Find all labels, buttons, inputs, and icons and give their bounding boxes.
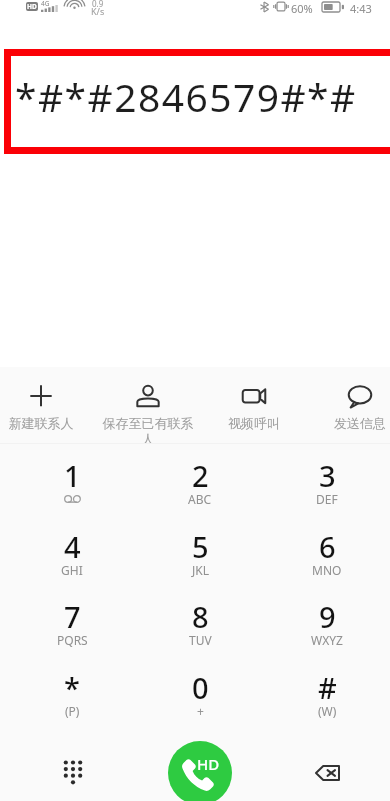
button[interactable]: Backspace	[297, 743, 357, 801]
staticText: ABC	[188, 491, 212, 507]
staticText: DEF	[316, 491, 338, 507]
staticText: 视频呼叫	[206, 415, 302, 431]
staticText: 9	[319, 597, 336, 636]
staticText: 发送信息	[312, 415, 390, 431]
staticText: +	[197, 703, 204, 719]
staticText: 4	[64, 527, 81, 566]
button[interactable]: 8	[145, 585, 255, 656]
staticText: TUV	[189, 632, 212, 648]
staticText: 4G	[41, 0, 50, 8]
button[interactable]: 0	[145, 656, 255, 727]
staticText: 1	[64, 456, 81, 495]
button[interactable]: #	[272, 656, 382, 727]
button[interactable]: 6	[272, 515, 382, 586]
staticText: GHI	[61, 562, 83, 578]
button[interactable]: 4	[17, 515, 127, 586]
staticText: JKL	[192, 562, 209, 578]
staticText: 0	[192, 668, 209, 707]
staticText: 7	[64, 597, 81, 636]
staticText: 新建联系人	[0, 415, 89, 431]
staticText: 8	[192, 597, 209, 636]
button[interactable]: Call	[168, 741, 232, 801]
staticText: *#*#2846579#*#	[15, 70, 390, 123]
staticText: HD	[197, 754, 220, 774]
staticText: 2	[192, 456, 209, 495]
button[interactable]: *	[17, 656, 127, 727]
button[interactable]: 7	[17, 585, 127, 656]
staticText: HD	[27, 2, 37, 11]
button[interactable]: Save to existing contact	[100, 370, 196, 448]
staticText: *	[64, 668, 80, 707]
staticText: 3	[319, 456, 336, 495]
button[interactable]: 2	[145, 444, 255, 515]
staticText: (P)	[65, 703, 80, 719]
staticText: MNO	[312, 562, 342, 578]
staticText: 保存至已有联系人	[100, 415, 196, 448]
staticText: #	[318, 668, 337, 707]
button[interactable]: 9	[272, 585, 382, 656]
staticText: 5	[192, 527, 209, 566]
staticText: 60%	[291, 1, 313, 16]
button[interactable]: 1	[17, 444, 127, 515]
staticText: WXYZ	[311, 632, 343, 648]
button[interactable]: 3	[272, 444, 382, 515]
staticText: 4:43	[350, 1, 372, 16]
button[interactable]: Video call	[206, 370, 302, 448]
button[interactable]: Dialpad	[43, 736, 103, 796]
staticText: 0.9	[92, 0, 104, 9]
staticText: (W)	[318, 703, 337, 719]
button[interactable]: Send message	[312, 370, 390, 448]
staticText: PQRS	[57, 632, 88, 648]
staticText: K/s	[91, 5, 105, 17]
staticText: 6	[319, 527, 336, 566]
button[interactable]: Add new contact	[0, 370, 89, 448]
button[interactable]: 5	[145, 515, 255, 586]
